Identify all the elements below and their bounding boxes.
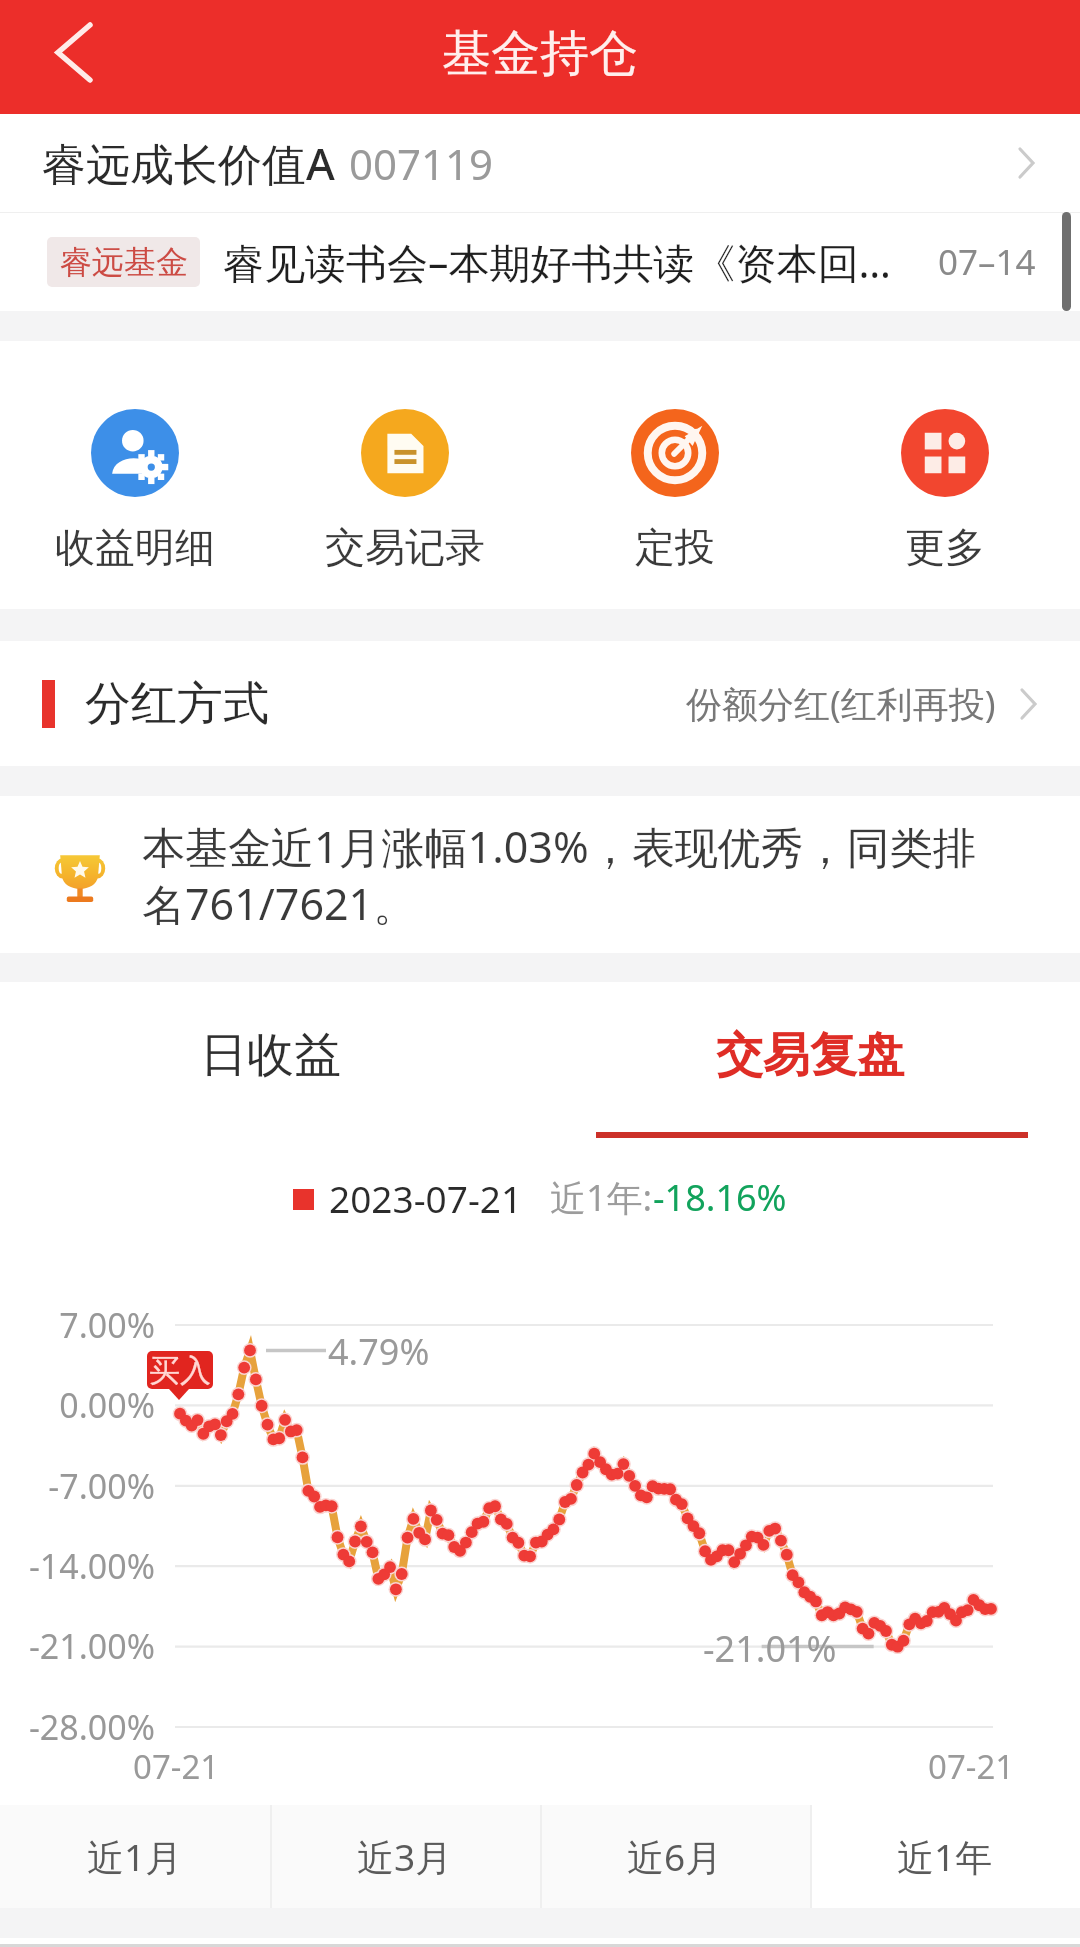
staticText: 收益明细 <box>55 522 215 572</box>
staticText: 7.00% <box>0 1302 155 1348</box>
button[interactable]: 近1月 <box>0 1805 270 1908</box>
button[interactable]: 睿远成长价值A <box>0 114 1080 212</box>
staticText: 007119 <box>349 135 494 192</box>
button[interactable]: 交易记录 <box>270 341 540 609</box>
button[interactable]: Back <box>30 19 106 95</box>
button[interactable]: 分红方式 <box>0 641 1080 766</box>
staticText: 日收益 <box>200 1026 341 1085</box>
staticText: 份额分红(红利再投) <box>686 679 996 728</box>
button[interactable]: 交易复盘 <box>540 982 1080 1145</box>
button[interactable]: 更多 <box>810 341 1080 609</box>
staticText: 近6月 <box>627 1831 723 1882</box>
staticText: -18.16% <box>653 1173 787 1222</box>
button[interactable]: 近1年 <box>810 1805 1080 1908</box>
staticText: 睿远基金 <box>60 242 188 282</box>
staticText: 近3月 <box>357 1831 453 1882</box>
staticText: -28.00% <box>0 1704 155 1750</box>
staticText: 交易记录 <box>325 522 485 572</box>
staticText: 定投 <box>635 522 715 572</box>
staticText: 07–14 <box>938 238 1036 286</box>
button[interactable]: 近6月 <box>540 1805 810 1908</box>
staticText: -7.00% <box>0 1463 155 1509</box>
staticText: 0.00% <box>0 1382 155 1428</box>
staticText: 基金持仓 <box>442 23 638 85</box>
staticText: 交易复盘 <box>716 1026 904 1085</box>
button[interactable]: 定投 <box>540 341 810 609</box>
staticText: 买入 <box>149 1351 211 1389</box>
staticText: 本基金近1月涨幅1.03%，表现优秀，同类排名761/7621。 <box>142 817 1004 933</box>
staticText: 07-21 <box>928 1744 1015 1789</box>
staticText: 2023-07-21 <box>329 1173 523 1223</box>
staticText: 近1年 <box>897 1831 993 1882</box>
button[interactable]: 收益明细 <box>0 341 270 609</box>
staticText: 更多 <box>905 522 985 572</box>
button[interactable]: 睿远基金 <box>0 212 1080 311</box>
staticText: 睿见读书会–本期好书共读《资本回… <box>223 234 891 290</box>
button[interactable]: 近3月 <box>270 1805 540 1908</box>
staticText: -21.01% <box>703 1624 837 1673</box>
button[interactable]: 日收益 <box>0 982 540 1145</box>
staticText: -14.00% <box>0 1543 155 1589</box>
staticText: 睿远成长价值A <box>42 133 335 193</box>
staticText: 近1月 <box>87 1831 183 1882</box>
staticText: -21.00% <box>0 1623 155 1669</box>
staticText: 分红方式 <box>85 675 269 733</box>
staticText: 4.79% <box>328 1327 430 1376</box>
staticText: 07-21 <box>133 1744 220 1789</box>
staticText: 近1年: <box>550 1173 653 1222</box>
